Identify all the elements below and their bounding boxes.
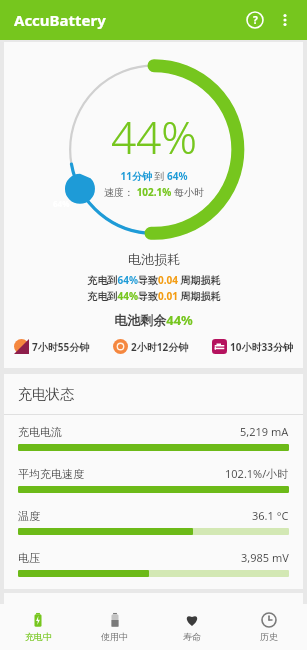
button[interactable]: 历史 xyxy=(230,604,307,650)
staticText: 充电状态 xyxy=(18,386,74,404)
staticText: 充电中 xyxy=(25,631,52,642)
staticText: 36.1 °C xyxy=(252,508,289,523)
staticText: 充电到44%导致0.01 周期损耗 xyxy=(87,289,221,303)
staticText: 充电电流 xyxy=(18,425,62,439)
staticText: 64% xyxy=(53,198,70,209)
button[interactable]: 充电中 xyxy=(0,604,76,650)
staticText: ? xyxy=(253,13,258,27)
button[interactable]: 使用中 xyxy=(76,604,153,650)
staticText: 电池损耗 xyxy=(128,251,180,267)
staticText: 3,985 mV xyxy=(241,550,289,565)
staticText: 历史 xyxy=(260,631,278,642)
button[interactable]: 温度 xyxy=(4,499,303,541)
button[interactable]: Help xyxy=(241,6,269,34)
staticText: 速度： 102.1% 每小时 xyxy=(104,185,204,199)
staticText: AccuBattery xyxy=(14,10,106,30)
button[interactable]: 电压 xyxy=(4,541,303,583)
staticText: 44% xyxy=(111,107,197,167)
button[interactable]: 充电电流 xyxy=(4,415,303,457)
staticText: 102.1%/小时 xyxy=(225,466,289,481)
staticText: 温度 xyxy=(18,509,40,523)
staticText: 5,219 mA xyxy=(240,424,289,439)
staticText: 平均充电速度 xyxy=(18,467,84,481)
button[interactable]: More options xyxy=(271,6,299,34)
staticText: 电压 xyxy=(18,551,40,565)
staticText: 2小时12分钟 xyxy=(131,340,189,354)
staticText: 充电到64%导致0.04 周期损耗 xyxy=(87,273,221,287)
staticText: 使用中 xyxy=(101,631,128,642)
staticText: 10小时33分钟 xyxy=(230,340,293,354)
button[interactable]: 平均充电速度 xyxy=(4,457,303,499)
staticText: 寿命 xyxy=(183,631,201,642)
staticText: 11分钟 到 64% xyxy=(120,169,188,183)
button[interactable]: 寿命 xyxy=(153,604,230,650)
staticText: 电池剩余44% xyxy=(114,311,193,329)
staticText: 7小时55分钟 xyxy=(32,340,90,354)
